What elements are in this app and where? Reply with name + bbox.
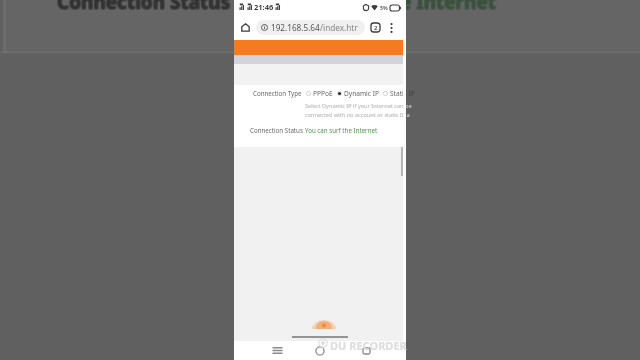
staticText: Dynamic IP xyxy=(344,89,379,98)
staticText: e Internet xyxy=(400,0,497,15)
button[interactable]: Tabs xyxy=(369,21,382,34)
button[interactable]: Recorder xyxy=(312,320,336,329)
staticText: Connection Status xyxy=(58,0,232,15)
staticText: Connection Status xyxy=(56,0,230,16)
button[interactable]: Home xyxy=(305,341,335,360)
staticText: 5% xyxy=(380,4,388,11)
button[interactable]: More options xyxy=(385,21,398,34)
staticText: e Internet xyxy=(401,0,498,15)
staticText: e Internet xyxy=(401,0,498,16)
staticText: e Internet xyxy=(399,0,496,15)
staticText: Connection Status xyxy=(57,0,231,14)
staticText: Connection Type xyxy=(253,89,302,97)
button[interactable]: Home xyxy=(238,20,253,35)
staticText: e Internet xyxy=(399,0,496,16)
staticText: Connection Status xyxy=(250,126,303,134)
button[interactable]: Back xyxy=(351,341,381,360)
staticText: e Internet xyxy=(399,0,496,14)
staticText: Connection Status xyxy=(56,0,230,15)
staticText: Connection Status xyxy=(57,0,231,15)
staticText: /index.htr xyxy=(320,22,358,33)
button[interactable]: Recents xyxy=(262,341,292,360)
staticText: e Internet xyxy=(400,0,497,16)
staticText: Static IP xyxy=(390,89,415,98)
staticText: 192.168.5.64 xyxy=(271,22,320,33)
staticText: 2 xyxy=(374,24,378,32)
staticText: 21:46 xyxy=(254,2,274,12)
staticText: Connection Status xyxy=(58,0,232,16)
staticText: e Internet xyxy=(401,0,498,14)
staticText: PPPoE xyxy=(313,89,333,98)
staticText: Connection Status xyxy=(56,0,230,14)
staticText: connected with no account or static IP a xyxy=(305,111,410,119)
staticText: Connection Status xyxy=(57,0,231,16)
staticText: You can surf the Internet xyxy=(305,126,378,134)
staticText: Select Dynamic IP if your Internet can b… xyxy=(305,102,412,110)
staticText: DU RECORDER xyxy=(330,338,407,353)
staticText: Connection Status xyxy=(58,0,232,14)
button[interactable]: 192.168.5.64 xyxy=(256,20,365,35)
staticText: e Internet xyxy=(400,0,497,14)
